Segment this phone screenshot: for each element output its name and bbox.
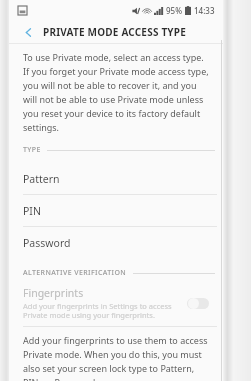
staticText: Password [23,236,71,250]
button[interactable]: Pattern [9,163,223,194]
staticText: ALTERNATIVE VERIFICATION [23,268,127,278]
staticText: Add your fingerprints in Settings to acc… [23,301,181,321]
staticText: Fingerprints [23,286,84,300]
button[interactable]: Navigate up [19,23,37,41]
button[interactable]: PIN [9,195,223,226]
button[interactable]: Fingerprints toggle [187,298,209,309]
staticText: PRIVATE MODE ACCESS TYPE [43,25,187,39]
staticText: To use Private mode, select an access ty… [23,51,211,133]
button[interactable]: Password [9,227,223,258]
staticText: 95% [166,5,182,16]
staticText: TYPE [23,145,41,155]
staticText: Add your fingerprints to use them to acc… [23,334,211,381]
staticText: PIN [23,204,41,218]
staticText: 14:33 [194,5,215,16]
button[interactable]: Fingerprints [9,284,223,322]
staticText: Pattern [23,172,60,186]
